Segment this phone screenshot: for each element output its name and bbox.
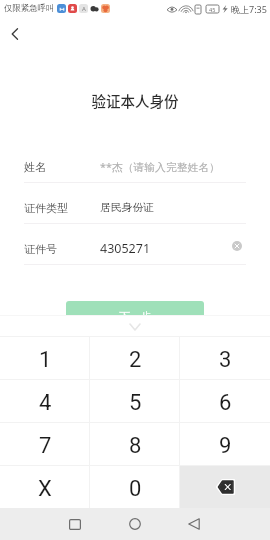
button[interactable]: 下一步 — [66, 301, 204, 335]
button[interactable]: Hide keyboard — [123, 318, 147, 336]
staticText: 姓名 — [24, 160, 46, 174]
button[interactable]: 证件号 — [0, 224, 270, 265]
staticText: 9 — [219, 433, 232, 459]
staticText: 1 — [39, 347, 52, 373]
staticText: 45 — [209, 6, 216, 13]
staticText: 晚上7:35 — [231, 3, 267, 15]
button[interactable]: 4 — [0, 380, 90, 422]
staticText: 验证本人身份 — [0, 90, 270, 111]
button[interactable]: Delete — [180, 466, 270, 508]
staticText: 6 — [219, 390, 232, 416]
button[interactable]: 3 — [180, 337, 270, 379]
button[interactable]: 1 — [0, 337, 90, 379]
button[interactable]: 6 — [180, 380, 270, 422]
staticText: 4305271 — [100, 240, 232, 257]
staticText: 证件类型 — [24, 201, 68, 215]
staticText: 7 — [39, 433, 52, 459]
staticText: 下一步 — [119, 309, 152, 323]
staticText: 8 — [129, 433, 142, 459]
button[interactable]: 8 — [90, 423, 180, 465]
other: Delete — [217, 480, 234, 494]
button[interactable]: X — [0, 466, 90, 508]
button[interactable]: 7 — [0, 423, 90, 465]
staticText: **杰（请输入完整姓名） — [100, 159, 242, 174]
button[interactable]: 姓名 — [0, 142, 270, 183]
staticText: X — [38, 476, 52, 502]
button[interactable]: Recents — [57, 508, 93, 540]
staticText: 2 — [129, 347, 142, 373]
button[interactable]: Back — [0, 19, 30, 49]
staticText: 仅限紧急呼叫 — [4, 3, 55, 14]
button[interactable]: 2 — [90, 337, 180, 379]
button[interactable]: Back — [176, 508, 212, 540]
button[interactable]: 证件类型 — [0, 183, 270, 224]
button[interactable]: 9 — [180, 423, 270, 465]
button[interactable]: 5 — [90, 380, 180, 422]
staticText: 3 — [219, 347, 232, 373]
button[interactable]: 0 — [90, 466, 180, 508]
staticText: 5 — [129, 390, 142, 416]
staticText: 居民身份证 — [100, 201, 242, 215]
staticText: A — [82, 5, 86, 13]
staticText: 证件号 — [24, 242, 57, 256]
button[interactable]: Home — [117, 508, 153, 540]
staticText: 4 — [39, 390, 52, 416]
staticText: 0 — [129, 476, 142, 502]
